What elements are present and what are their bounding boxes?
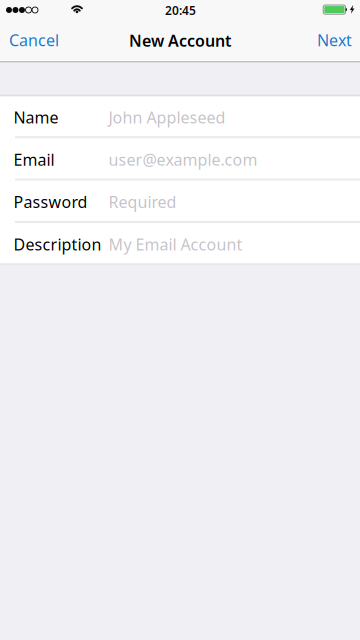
staticText: Password	[13, 191, 87, 212]
button[interactable]: Password	[0, 181, 360, 223]
staticText: My Email Account	[108, 234, 242, 255]
staticText: 20:45	[165, 2, 196, 18]
staticText: New Account	[129, 30, 231, 51]
button[interactable]: Next	[309, 20, 360, 59]
staticText: Description	[13, 234, 101, 255]
button[interactable]: Name	[0, 96, 360, 138]
staticText: user@example.com	[108, 149, 257, 170]
button[interactable]: Description	[0, 223, 360, 264]
staticText: Name	[13, 107, 58, 128]
staticText: Required	[108, 191, 176, 212]
staticText: John Appleseed	[108, 107, 225, 128]
button[interactable]: Email	[0, 138, 360, 181]
staticText: Next	[317, 29, 352, 51]
button[interactable]: Cancel	[0, 20, 68, 59]
staticText: Cancel	[9, 29, 59, 51]
staticText: Email	[13, 149, 54, 170]
